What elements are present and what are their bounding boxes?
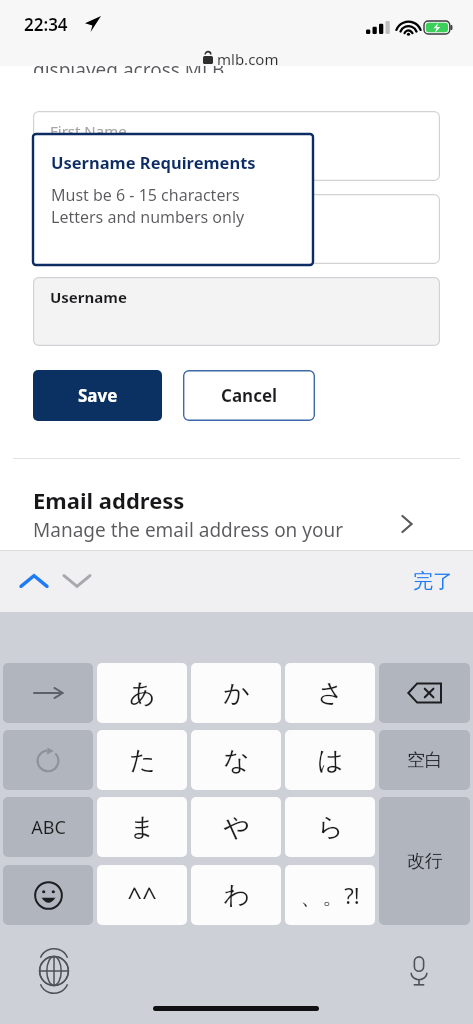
button[interactable]: Email address <box>0 466 473 550</box>
button[interactable]: First Name <box>33 111 440 181</box>
staticText: Save <box>78 384 118 407</box>
button[interactable]: Next field <box>55 559 99 603</box>
staticText: Must be 6 - 15 characters <box>51 184 240 206</box>
staticText: Cancel <box>221 384 278 407</box>
staticText: た <box>129 744 156 777</box>
staticText: ^^ <box>127 878 157 913</box>
button[interactable]: わ <box>191 865 281 925</box>
button[interactable]: ^^ <box>97 865 187 925</box>
staticText: displayed across MLB <box>33 66 225 73</box>
button[interactable]: Backspace <box>379 663 470 723</box>
button[interactable]: か <box>191 663 281 723</box>
staticText: ま <box>129 811 156 844</box>
staticText: や <box>223 811 250 844</box>
staticText: Username Requirements <box>51 151 256 173</box>
staticText: Username <box>50 287 127 307</box>
staticText: ら <box>317 811 344 844</box>
button[interactable]: は <box>285 730 375 790</box>
button[interactable]: な <box>191 730 281 790</box>
button[interactable]: Undo <box>3 730 93 790</box>
staticText: Letters and numbers only <box>51 206 245 228</box>
button[interactable]: 完了 <box>404 558 462 604</box>
button[interactable]: や <box>191 797 281 857</box>
button[interactable]: Cancel <box>183 370 315 421</box>
staticText: 、。?! <box>300 880 360 910</box>
button[interactable]: あ <box>97 663 187 723</box>
staticText: ABC <box>31 815 66 840</box>
staticText: は <box>317 744 344 777</box>
staticText: Manage the email address on your <box>33 517 344 543</box>
staticText: 完了 <box>413 569 453 594</box>
button[interactable]: Switch keyboard <box>32 949 76 993</box>
button[interactable]: 空白 <box>379 730 470 790</box>
button[interactable]: Username Requirements <box>32 133 314 266</box>
button[interactable]: Previous field <box>12 559 56 603</box>
button[interactable]: ABC <box>3 797 93 857</box>
button[interactable] <box>3 663 93 723</box>
button[interactable] <box>33 194 440 264</box>
staticText: 22:34 <box>24 13 68 36</box>
staticText: First Name <box>50 121 127 141</box>
button[interactable]: ま <box>97 797 187 857</box>
staticText: 改行 <box>407 850 443 873</box>
button[interactable]: ら <box>285 797 375 857</box>
button[interactable]: Save <box>33 370 162 421</box>
button[interactable]: さ <box>285 663 375 723</box>
staticText: mlb.com <box>217 49 279 69</box>
button[interactable]: Dictation <box>397 949 441 993</box>
button[interactable]: 、。?! <box>285 865 375 925</box>
button[interactable]: Username <box>33 277 440 346</box>
staticText: Email address <box>33 485 185 515</box>
staticText: さ <box>317 677 344 710</box>
button[interactable]: た <box>97 730 187 790</box>
staticText: か <box>223 677 250 710</box>
staticText: あ <box>129 677 156 710</box>
button[interactable]: Emoji <box>3 865 93 925</box>
staticText: 空白 <box>407 749 443 772</box>
staticText: な <box>223 744 250 777</box>
button[interactable]: 改行 <box>379 797 470 925</box>
staticText: わ <box>223 879 250 912</box>
